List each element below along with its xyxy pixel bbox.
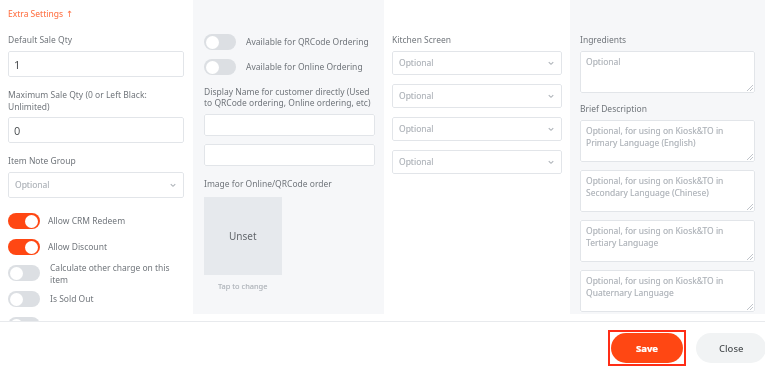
button[interactable]: Calculate other charge on this item <box>8 262 184 284</box>
button[interactable]: Allow CRM Redeem <box>8 210 184 232</box>
button[interactable]: Optional <box>392 150 562 174</box>
staticText: Close <box>719 342 744 355</box>
staticText: Display Name for customer directly (Used… <box>204 86 375 108</box>
staticText: Image for Online/QRCode order <box>204 178 332 190</box>
staticText: Ingredients <box>580 34 627 46</box>
staticText: Optional <box>586 56 621 68</box>
staticText: 1 <box>14 57 21 72</box>
staticText: Default Sale Qty <box>8 34 73 46</box>
button[interactable]: Is Sold Out <box>8 288 184 310</box>
staticText: Available for Online Ordering <box>246 61 363 73</box>
button[interactable]: Available for Online Ordering <box>204 56 375 78</box>
button[interactable]: Allow Discount <box>8 236 184 258</box>
staticText: Brief Description <box>580 103 647 115</box>
button[interactable]: Optional, for using on Kiosk&TO in Quate… <box>580 270 755 312</box>
button[interactable]: Available for QRCode Ordering <box>204 31 375 53</box>
staticText: Allow Discount <box>48 241 107 253</box>
staticText: Optional, for using on Kiosk&TO in Terti… <box>586 225 747 249</box>
staticText: Optional <box>399 156 434 168</box>
button[interactable]: Optional <box>392 51 562 75</box>
staticText: Item Note Group <box>8 155 76 167</box>
staticText: Unset <box>229 229 257 243</box>
staticText: Calculate other charge on this item <box>50 262 184 284</box>
button[interactable] <box>204 144 375 166</box>
staticText: Optional <box>399 90 434 102</box>
staticText: Optional, for using on Kiosk&TO in Quate… <box>586 275 747 299</box>
staticText: Kitchen Screen <box>392 34 452 46</box>
button[interactable]: Optional, for using on Kiosk&TO in Terti… <box>580 220 755 262</box>
button[interactable]: Optional <box>392 117 562 141</box>
button[interactable]: Time Consuming Item <box>8 314 184 336</box>
staticText: 0 <box>14 123 21 138</box>
button[interactable]: Optional <box>8 172 184 198</box>
staticText: Is Sold Out <box>50 293 94 305</box>
button[interactable]: 1 <box>8 51 184 77</box>
button[interactable]: Extra Settings <box>8 8 74 20</box>
staticText: Allow CRM Redeem <box>48 215 126 227</box>
staticText: Optional, for using on Kiosk&TO in Secon… <box>586 175 747 199</box>
staticText: Optional <box>15 179 50 191</box>
staticText: Maximum Sale Qty (0 or Left Black: Unlim… <box>8 89 184 112</box>
button[interactable] <box>204 114 375 136</box>
button[interactable]: Optional <box>580 51 755 93</box>
staticText: Extra Settings <box>8 8 63 20</box>
staticText: Save <box>636 342 659 355</box>
button[interactable]: Unset <box>204 197 282 291</box>
button[interactable]: 0 <box>8 117 184 143</box>
staticText: Tap to change <box>218 281 268 291</box>
staticText: Optional, for using on Kiosk&TO in Prima… <box>586 125 747 149</box>
button[interactable]: Save <box>611 333 683 363</box>
button[interactable]: Close <box>696 333 765 363</box>
button[interactable]: Optional, for using on Kiosk&TO in Secon… <box>580 170 755 212</box>
staticText: Time Consuming Item <box>50 319 139 331</box>
staticText: Available for QRCode Ordering <box>246 36 369 48</box>
staticText: ↑ <box>66 9 74 19</box>
staticText: Optional <box>399 123 434 135</box>
button[interactable]: Optional <box>392 84 562 108</box>
staticText: Optional <box>399 57 434 69</box>
button[interactable]: Optional, for using on Kiosk&TO in Prima… <box>580 120 755 162</box>
